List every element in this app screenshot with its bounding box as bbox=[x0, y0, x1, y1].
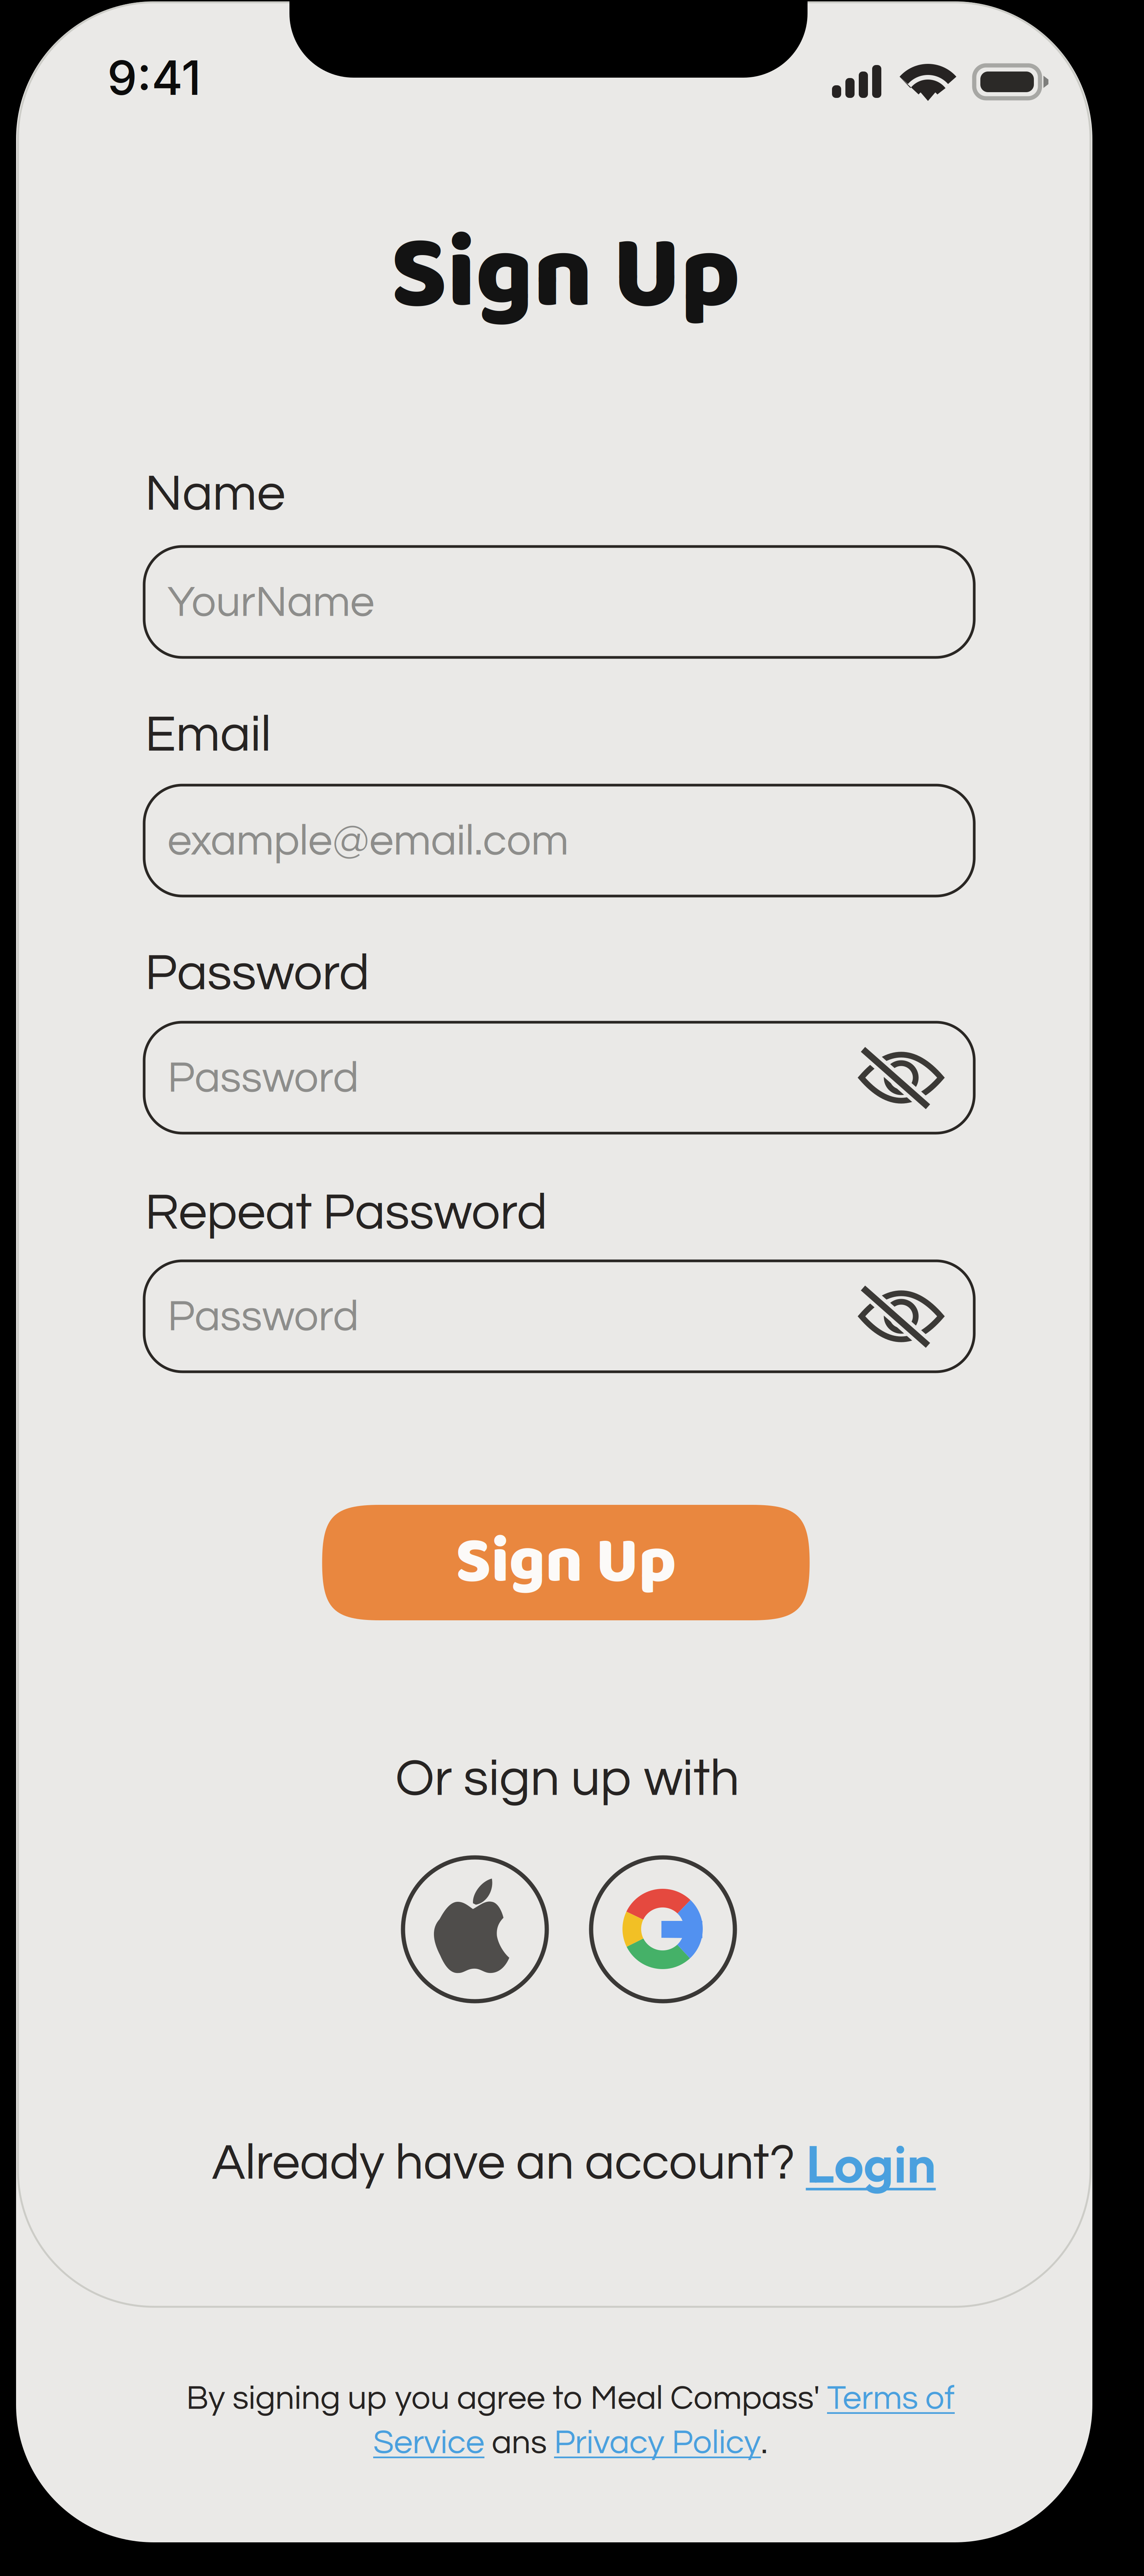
button[interactable]: Sign up with Apple bbox=[0, 0, 1144, 2576]
staticText: Password bbox=[145, 947, 369, 1000]
staticText: Service bbox=[373, 2426, 484, 2460]
staticText: Terms of bbox=[827, 2381, 955, 2416]
button[interactable]: Terms of bbox=[827, 2381, 955, 2416]
button[interactable]: Service bbox=[373, 2426, 484, 2460]
staticText: Repeat Password bbox=[145, 1187, 547, 1239]
staticText: Login bbox=[806, 2131, 936, 2196]
staticText: 9:41 bbox=[107, 49, 201, 106]
staticText: . bbox=[761, 2426, 768, 2460]
button[interactable]: example@email.com bbox=[0, 0, 1144, 2576]
staticText: Privacy Policy bbox=[554, 2426, 761, 2460]
staticText: By signing up you agree to Meal Compass' bbox=[186, 2381, 827, 2416]
staticText: ans bbox=[484, 2426, 554, 2460]
button[interactable]: Privacy Policy bbox=[554, 2426, 761, 2460]
staticText: Sign Up bbox=[391, 194, 740, 358]
staticText: Password bbox=[167, 1295, 359, 1339]
staticText: Name bbox=[145, 468, 285, 520]
button[interactable]: YourName bbox=[0, 0, 1144, 2576]
staticText: Email bbox=[145, 709, 271, 761]
staticText: example@email.com bbox=[167, 819, 569, 864]
button[interactable]: Password bbox=[0, 0, 1144, 2576]
staticText: Sign Up bbox=[456, 1511, 676, 1614]
button[interactable]: Sign Up bbox=[0, 0, 1144, 2576]
staticText: Already have an account? bbox=[212, 2138, 806, 2189]
staticText: Or sign up with bbox=[395, 1752, 739, 1806]
staticText: Password bbox=[167, 1056, 359, 1101]
staticText: YourName bbox=[167, 580, 374, 625]
button[interactable]: Password bbox=[0, 0, 1144, 2576]
button[interactable]: Sign up with Google bbox=[0, 0, 1144, 2576]
button[interactable]: Login bbox=[806, 2131, 936, 2196]
